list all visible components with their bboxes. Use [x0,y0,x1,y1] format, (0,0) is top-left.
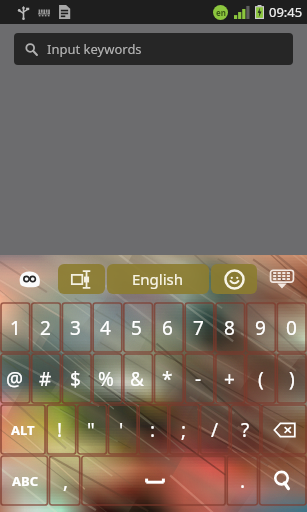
button[interactable]: ! [45,404,75,455]
button[interactable]: ABC [0,455,49,506]
staticText: : [150,417,156,443]
button[interactable]: 4 [90,302,121,353]
button[interactable]: & [121,353,152,404]
staticText: ? [241,417,250,443]
button[interactable]: 7 [183,302,214,353]
staticText: 7 [193,315,204,341]
staticText: ALT [11,421,35,439]
staticText: & [130,366,144,392]
button[interactable]: Search [259,455,307,506]
staticText: " [87,417,95,443]
button[interactable]: 0 [276,302,307,353]
button[interactable]: English [107,264,209,294]
button[interactable]: " [75,404,106,455]
button[interactable]: 8 [214,302,245,353]
staticText: Input keywords [47,40,142,58]
staticText: , [63,468,69,494]
button[interactable]: @ [0,353,30,404]
staticText: ' [119,417,124,443]
button[interactable]: - [183,353,214,404]
staticText: # [39,366,52,392]
button[interactable]: ALT [0,404,45,455]
button[interactable]: 2 [30,302,60,353]
button[interactable]: ' [106,404,137,455]
button[interactable]: Space [82,455,227,506]
button[interactable]: % [90,353,121,404]
staticText: @ [6,366,24,392]
staticText: ABC [12,472,38,490]
button[interactable]: * [152,353,183,404]
staticText: ( [258,366,264,392]
button[interactable]: , [49,455,82,506]
button[interactable]: 9 [245,302,276,353]
button[interactable]: 1 [0,302,30,353]
staticText: 6 [162,315,173,341]
staticText: - [195,366,202,392]
button[interactable]: Input keywords [14,33,293,65]
button[interactable]: 5 [121,302,152,353]
button[interactable]: Hide keyboard [257,255,307,302]
staticText: 09:45 [269,3,303,21]
button[interactable]: . [227,455,259,506]
staticText: ! [57,417,63,443]
staticText: 8 [224,315,235,341]
staticText: 9 [255,315,266,341]
staticText: ) [289,366,295,392]
staticText: % [98,366,114,392]
button[interactable]: Backspace [261,404,307,455]
staticText: en [216,7,226,18]
button[interactable]: 3 [60,302,90,353]
button[interactable]: + [214,353,245,404]
staticText: 1 [10,315,21,341]
button[interactable]: $ [60,353,90,404]
staticText: 3 [70,315,81,341]
button[interactable]: / [199,404,230,455]
button[interactable]: ( [245,353,276,404]
staticText: 2 [40,315,51,341]
staticText: $ [70,366,81,392]
button[interactable]: ) [276,353,307,404]
staticText: English [132,269,184,289]
staticText: + [224,366,235,392]
button[interactable]: # [30,353,60,404]
button[interactable]: Switch input mode [58,264,105,294]
staticText: ; [181,417,187,443]
staticText: 0 [286,315,297,341]
staticText: / [211,417,219,443]
button[interactable]: Emoji [211,264,257,294]
staticText: . [240,468,246,494]
staticText: 5 [131,315,142,341]
button[interactable]: ? [230,404,261,455]
button[interactable]: : [137,404,168,455]
button[interactable]: 6 [152,302,183,353]
button[interactable]: Keyboard menu [0,255,58,302]
staticText: * [162,366,173,392]
button[interactable]: ; [168,404,199,455]
staticText: 4 [100,315,111,341]
